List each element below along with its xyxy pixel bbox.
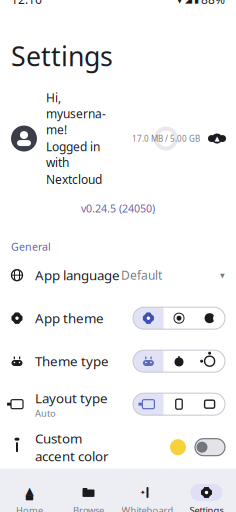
button[interactable]: Layout type — [0, 383, 236, 426]
button[interactable]: Option 3 — [194, 307, 225, 329]
button[interactable]: Option 1 — [133, 350, 164, 372]
button[interactable]: Theme type — [0, 340, 236, 383]
button[interactable]: Hi, myusername! — [0, 74, 236, 187]
staticText: Default — [121, 267, 162, 283]
staticText: Nextcloud — [46, 171, 102, 187]
staticText: Auto — [35, 407, 56, 419]
button[interactable]: Option 3 — [194, 393, 225, 415]
staticText: Hi, myusername! — [46, 90, 106, 137]
button[interactable]: Option 3 — [194, 350, 225, 372]
staticText: ◢ — [185, 0, 192, 5]
button[interactable]: ▲ — [0, 484, 59, 512]
button[interactable]: ✦ — [118, 484, 177, 512]
staticText: Custom accent color — [35, 429, 109, 465]
staticText: ▲ — [214, 135, 219, 142]
button[interactable]: Custom accent colour toggle — [195, 439, 225, 456]
button[interactable]: App language — [0, 254, 236, 297]
staticText: 12:16 — [11, 0, 42, 7]
staticText: ▮ — [194, 0, 199, 5]
staticText: Settings — [11, 38, 113, 74]
button[interactable]: Option 1 — [133, 393, 164, 415]
staticText: ✦ — [140, 489, 146, 496]
button[interactable]: Custom accent color — [0, 426, 236, 469]
button[interactable]: App theme — [0, 297, 236, 340]
button[interactable]: Default — [121, 267, 225, 283]
staticText: Home — [16, 504, 43, 512]
button[interactable]: Browse — [59, 484, 118, 512]
staticText: Browse — [73, 504, 104, 512]
staticText: 88% — [201, 0, 225, 7]
button[interactable]: Option 1 — [133, 307, 164, 329]
button[interactable]: Option 2 — [164, 393, 194, 415]
button[interactable]: Accent colour swatch — [170, 439, 186, 455]
staticText: 17.0 MB / 5.00 GB — [132, 133, 200, 144]
staticText: Whiteboard — [121, 504, 173, 512]
staticText: Settings — [189, 504, 223, 512]
button[interactable]: Option 2 — [164, 350, 194, 372]
staticText: App language — [35, 266, 120, 284]
button[interactable]: Settings — [177, 484, 236, 512]
staticText: ▼ — [176, 0, 183, 5]
staticText: Theme type — [35, 352, 109, 370]
staticText: Layout type — [35, 389, 108, 407]
staticText: ▾ — [220, 270, 225, 280]
staticText: ▲ — [25, 485, 33, 497]
staticText: Logged in with — [46, 138, 100, 170]
button[interactable]: Option 2 — [164, 307, 194, 329]
staticText: App theme — [35, 309, 104, 327]
staticText: v0.24.5 (24050) — [81, 201, 155, 215]
staticText: General — [11, 239, 51, 254]
